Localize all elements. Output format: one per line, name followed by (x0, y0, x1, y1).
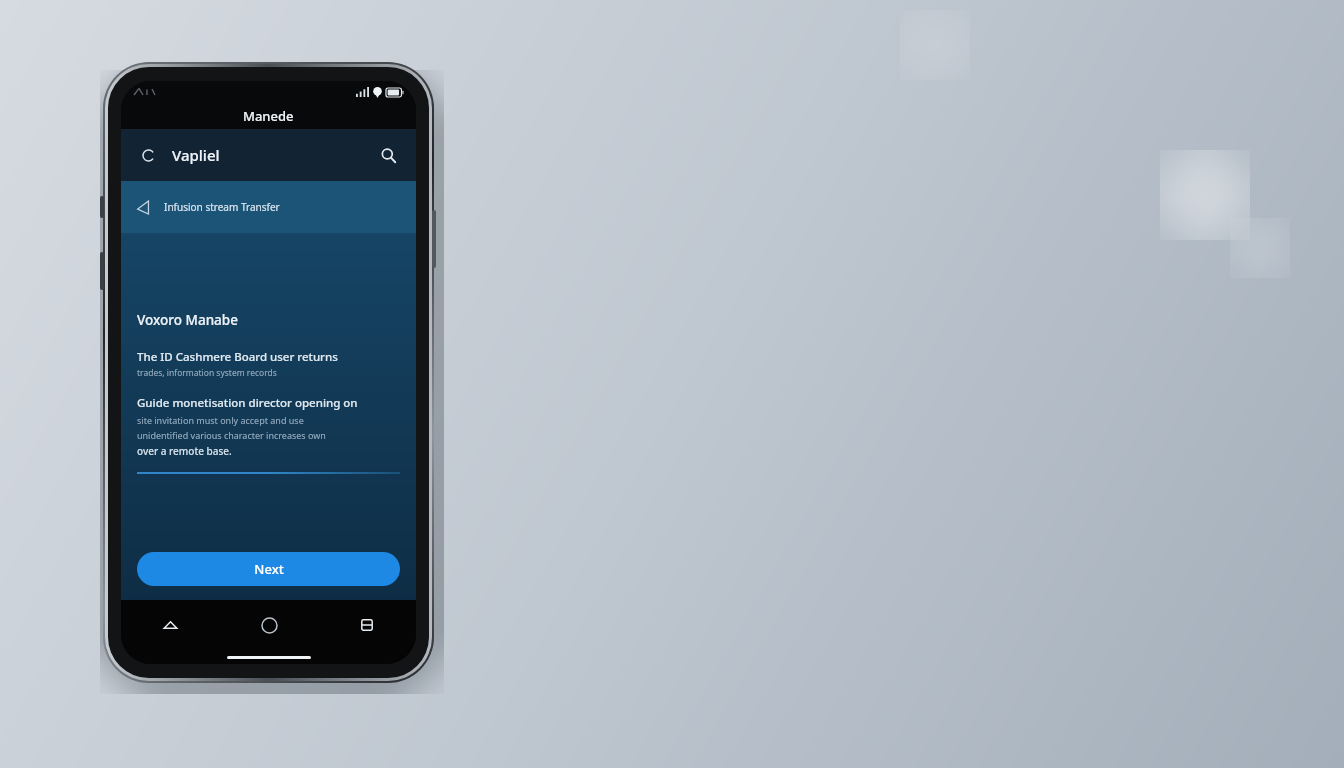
staticText: Infusion stream Transfer (164, 200, 280, 214)
button[interactable]: Back (135, 142, 161, 168)
button[interactable]: Infusion stream Transfer (121, 181, 416, 233)
staticText: unidentified various character increases… (137, 429, 326, 441)
staticText: trades, information system records (137, 367, 277, 379)
staticText: Voxoro Manabe (137, 311, 238, 329)
staticText: Guide monetisation director opening on (137, 395, 358, 411)
staticText: Next (254, 560, 284, 578)
staticText: site invitation must only accept and use (137, 414, 304, 426)
button[interactable]: Recent apps (318, 600, 416, 650)
button[interactable]: Search (374, 141, 402, 169)
staticText: over a remote base. (137, 444, 232, 458)
button[interactable]: Next (137, 552, 400, 586)
button[interactable]: Home (220, 600, 318, 650)
button[interactable]: Back (121, 600, 220, 650)
staticText: Manede (243, 107, 294, 125)
staticText: Vapliel (172, 145, 220, 165)
staticText: The ID Cashmere Board user returns (137, 349, 338, 365)
